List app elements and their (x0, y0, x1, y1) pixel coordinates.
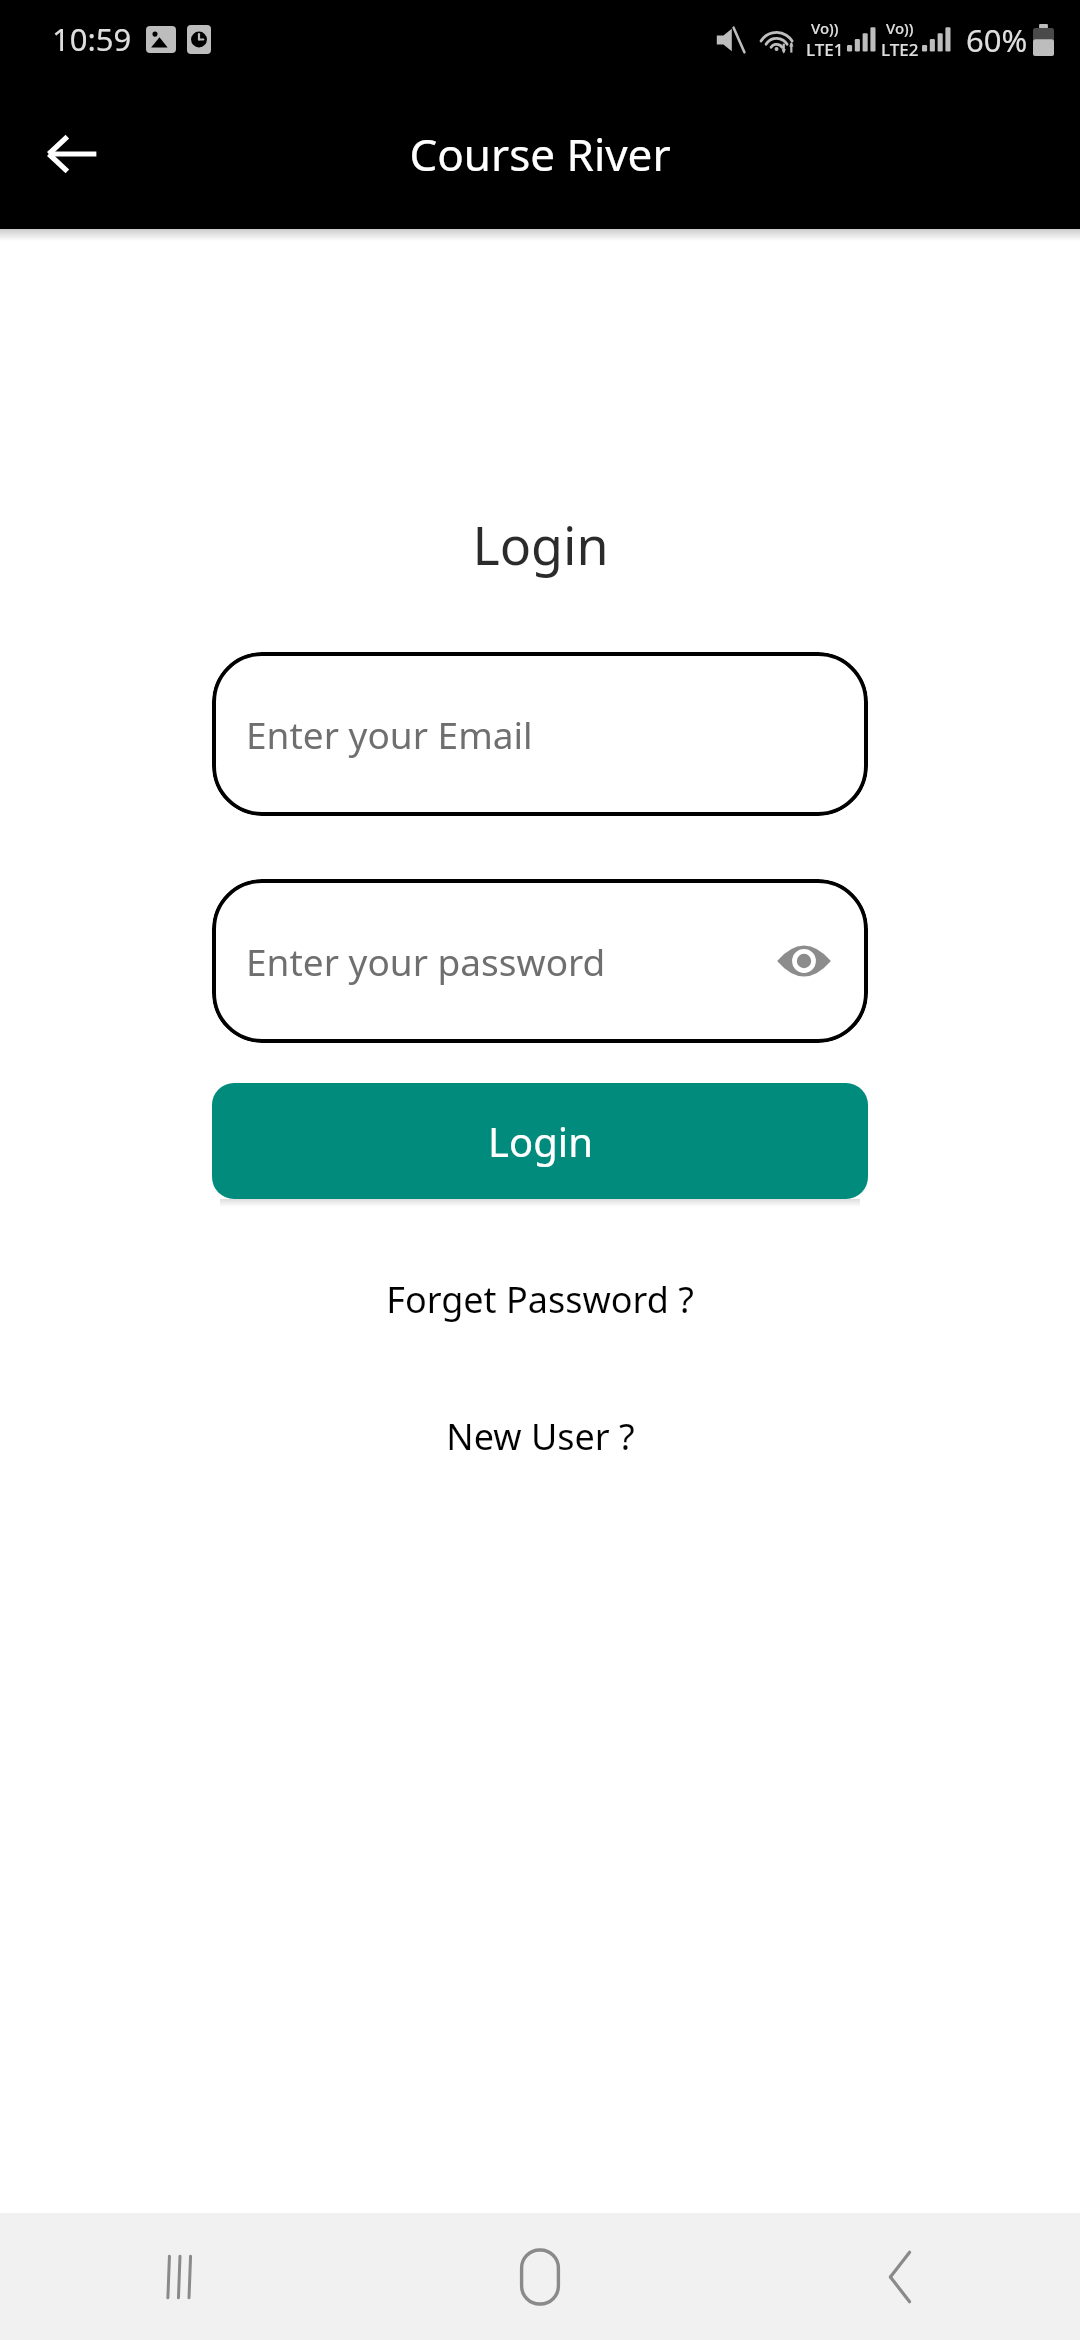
button[interactable]: Enter your password (212, 879, 868, 1043)
staticText: 60% (966, 19, 1028, 61)
button[interactable]: Home (360, 2213, 720, 2340)
staticText: Vo)) (811, 18, 839, 38)
staticText: Forget Password ? (386, 1275, 694, 1324)
button[interactable]: Back (720, 2213, 1080, 2340)
button[interactable]: Recent apps (0, 2213, 360, 2340)
staticText: Enter your Email (246, 709, 533, 759)
button[interactable]: Show password (772, 929, 836, 993)
staticText: Enter your password (246, 936, 606, 986)
staticText: New User ? (446, 1412, 635, 1461)
staticText: Login (472, 509, 609, 580)
staticText: 10:59 (52, 18, 132, 60)
staticText: Course River (409, 124, 671, 184)
button[interactable]: Enter your Email (212, 652, 868, 816)
staticText: Login (488, 1114, 593, 1168)
button[interactable]: New User ? (428, 1402, 653, 1471)
staticText: LTE2 (881, 38, 919, 61)
staticText: Vo)) (886, 18, 914, 38)
staticText: LTE1 (806, 38, 844, 61)
button[interactable]: Login (212, 1083, 868, 1199)
button[interactable]: Forget Password ? (368, 1265, 712, 1334)
button[interactable]: Back (26, 108, 118, 200)
